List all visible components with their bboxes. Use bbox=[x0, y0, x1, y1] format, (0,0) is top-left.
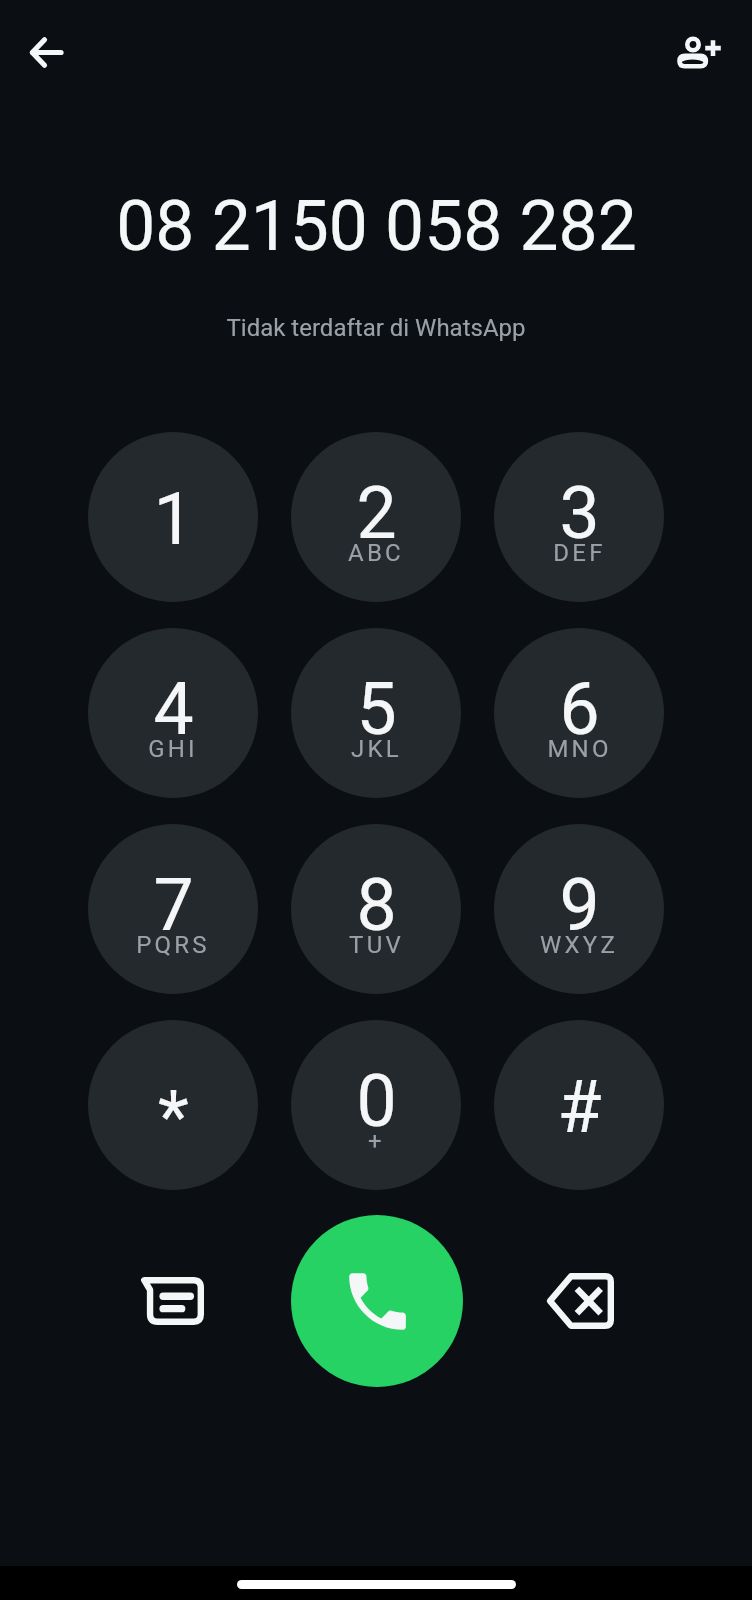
button[interactable]: 8 bbox=[291, 824, 461, 994]
staticText: PQRS bbox=[136, 931, 210, 959]
staticText: TUV bbox=[349, 931, 404, 959]
staticText: Tidak terdaftar di WhatsApp bbox=[226, 314, 526, 342]
staticText: 3 bbox=[559, 472, 600, 556]
staticText: # bbox=[557, 1066, 602, 1150]
staticText: 1 bbox=[153, 478, 194, 562]
staticText: * bbox=[158, 1076, 189, 1160]
button[interactable]: 4 bbox=[88, 628, 258, 798]
staticText: 2 bbox=[356, 472, 397, 556]
staticText: MNO bbox=[547, 735, 612, 763]
button[interactable]: 5 bbox=[291, 628, 461, 798]
staticText: 0 bbox=[356, 1060, 397, 1144]
button[interactable]: Call bbox=[291, 1215, 463, 1387]
button[interactable]: * bbox=[88, 1020, 258, 1190]
staticText: DEF bbox=[553, 539, 606, 567]
staticText: ABC bbox=[348, 539, 404, 567]
staticText: 6 bbox=[559, 668, 600, 752]
button[interactable]: 9 bbox=[494, 824, 664, 994]
staticText: 9 bbox=[559, 864, 600, 948]
button[interactable]: Add contact bbox=[658, 16, 738, 88]
button[interactable]: 7 bbox=[88, 824, 258, 994]
staticText: GHI bbox=[148, 735, 198, 763]
button[interactable]: 2 bbox=[291, 432, 461, 602]
button[interactable]: 3 bbox=[494, 432, 664, 602]
staticText: 7 bbox=[153, 864, 194, 948]
button[interactable]: 0 bbox=[291, 1020, 461, 1190]
staticText: 4 bbox=[153, 668, 194, 752]
staticText: 8 bbox=[356, 864, 397, 948]
staticText: JKL bbox=[351, 735, 402, 763]
staticText: 08 2150 058 282 bbox=[116, 186, 637, 267]
button[interactable]: 6 bbox=[494, 628, 664, 798]
staticText: 5 bbox=[356, 668, 397, 752]
staticText: WXYZ bbox=[540, 931, 618, 959]
staticText: + bbox=[368, 1127, 385, 1155]
button[interactable]: Send message bbox=[131, 1259, 215, 1343]
button[interactable]: 1 bbox=[88, 432, 258, 602]
button[interactable]: Back bbox=[10, 16, 82, 88]
button[interactable]: # bbox=[494, 1020, 664, 1190]
button[interactable]: Backspace bbox=[537, 1259, 621, 1343]
